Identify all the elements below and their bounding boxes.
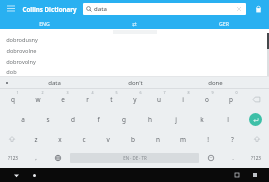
button[interactable]: dobrodusny — [0, 34, 269, 45]
button[interactable]: m — [170, 129, 195, 149]
button[interactable]: 1 — [0, 89, 25, 109]
staticText: 4 — [91, 90, 94, 95]
staticText: dobrovolny — [6, 58, 36, 66]
button[interactable]: Change language — [46, 149, 70, 167]
button[interactable]: v — [96, 129, 120, 149]
button[interactable]: d — [60, 109, 85, 129]
button[interactable]: n — [145, 129, 170, 149]
button[interactable]: s — [35, 109, 60, 129]
button[interactable]: don't — [95, 77, 175, 88]
staticText: dobrodusny — [6, 36, 38, 44]
staticText: h — [148, 115, 152, 124]
button[interactable]: GER — [179, 18, 269, 29]
button[interactable]: Shift — [0, 129, 24, 149]
button[interactable]: x — [48, 129, 72, 149]
staticText: ENG — [39, 20, 50, 27]
staticText: n — [156, 135, 160, 144]
staticText: f — [97, 115, 100, 124]
button[interactable]: ENG — [0, 18, 89, 29]
button[interactable]: 4 — [75, 89, 99, 109]
button[interactable]: ! — [195, 129, 220, 149]
button[interactable]: f — [85, 109, 111, 129]
button[interactable]: Collins Dictionary — [22, 5, 77, 13]
staticText: 2 — [41, 90, 44, 95]
button[interactable]: ?123 — [243, 149, 269, 167]
button[interactable]: ? — [220, 129, 245, 149]
button[interactable]: z — [24, 129, 48, 149]
staticText: b — [131, 135, 135, 144]
button[interactable]: g — [111, 109, 137, 129]
button[interactable]: 6 — [123, 89, 147, 109]
staticText: data — [48, 79, 61, 87]
button[interactable]: 0 — [219, 89, 243, 109]
button[interactable]: 2 — [25, 89, 50, 109]
staticText: t — [110, 95, 113, 104]
staticText: ⇄ — [132, 21, 137, 27]
button[interactable]: Bookmarks — [251, 2, 265, 16]
button[interactable]: Backspace — [243, 89, 269, 109]
button[interactable]: h — [137, 109, 163, 129]
staticText: c — [82, 135, 86, 144]
staticText: e — [61, 95, 65, 104]
button[interactable]: Shift — [245, 129, 269, 149]
button[interactable]: Back — [10, 169, 22, 181]
button[interactable]: Emoji — [199, 149, 223, 167]
staticText: p — [229, 95, 233, 104]
button[interactable]: 8 — [171, 89, 195, 109]
staticText: a — [21, 115, 25, 124]
staticText: 9 — [211, 90, 214, 95]
staticText: . — [232, 154, 234, 162]
staticText: v — [106, 135, 110, 144]
staticText: 0 — [235, 90, 238, 95]
staticText: 8 — [187, 90, 190, 95]
button[interactable]: 5 — [99, 89, 123, 109]
staticText: EN · DE · TR — [123, 155, 147, 161]
staticText: g — [122, 115, 126, 124]
staticText: GER — [219, 20, 229, 27]
staticText: done — [208, 79, 223, 87]
staticText: z — [34, 135, 38, 144]
staticText: r — [86, 95, 89, 104]
button[interactable]: 3 — [50, 89, 75, 109]
button[interactable]: Screenshot — [249, 169, 261, 181]
staticText: i — [182, 95, 184, 104]
button[interactable]: ⇄ — [89, 18, 179, 29]
button[interactable]: dobrovolny — [0, 56, 269, 67]
button[interactable]: a — [10, 109, 35, 129]
staticText: 1 — [16, 90, 19, 95]
button[interactable]: 9 — [195, 89, 219, 109]
button[interactable]: Clear search — [235, 5, 243, 13]
staticText: j — [175, 115, 177, 124]
staticText: dobrovolne — [6, 47, 37, 55]
button[interactable]: done — [175, 77, 255, 88]
staticText: 7 — [163, 90, 166, 95]
staticText: d — [71, 115, 75, 124]
button[interactable]: k — [189, 109, 215, 129]
button[interactable]: Voice input — [0, 77, 14, 88]
button[interactable]: dobrovolne — [0, 45, 269, 56]
staticText: Collins Dictionary — [22, 5, 77, 13]
staticText: y — [133, 95, 137, 104]
button[interactable]: l — [215, 109, 241, 129]
button[interactable]: EN · DE · TR — [70, 153, 199, 163]
button[interactable]: data — [14, 77, 95, 88]
button[interactable]: Open navigation menu — [4, 2, 18, 16]
button[interactable]: Recent apps — [231, 169, 243, 181]
button[interactable]: data — [83, 3, 246, 15]
button[interactable]: Enter — [241, 109, 269, 129]
button[interactable]: j — [163, 109, 189, 129]
button[interactable]: b — [120, 129, 145, 149]
button[interactable]: c — [72, 129, 96, 149]
staticText: ?123 — [8, 155, 18, 161]
staticText: , — [35, 154, 37, 162]
button[interactable]: dob — [0, 67, 269, 77]
staticText: ! — [207, 135, 209, 144]
button[interactable]: ?123 — [0, 149, 26, 167]
staticText: o — [205, 95, 209, 104]
button[interactable]: 7 — [147, 89, 171, 109]
button[interactable]: Home — [28, 169, 40, 181]
staticText: u — [157, 95, 161, 104]
staticText: 3 — [66, 90, 69, 95]
